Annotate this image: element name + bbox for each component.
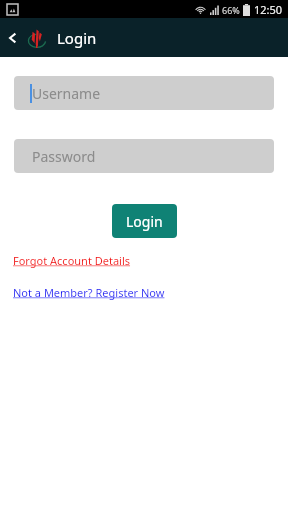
staticText: 66% bbox=[222, 4, 240, 16]
button[interactable]: Username bbox=[14, 76, 274, 110]
button[interactable]: Login bbox=[112, 204, 177, 238]
button[interactable]: Back bbox=[0, 25, 26, 51]
button[interactable]: Password bbox=[14, 139, 274, 173]
staticText: Username bbox=[32, 84, 101, 103]
staticText: Login bbox=[126, 212, 163, 231]
staticText: 12:50 bbox=[254, 2, 283, 17]
staticText: Forgot Account Details bbox=[13, 253, 131, 268]
staticText: Password bbox=[32, 147, 96, 166]
button[interactable]: Forgot Account Details bbox=[13, 253, 131, 268]
button[interactable]: Not a Member? Register Now bbox=[13, 285, 165, 300]
staticText: Not a Member? Register Now bbox=[13, 285, 165, 300]
staticText: Login bbox=[57, 28, 97, 48]
